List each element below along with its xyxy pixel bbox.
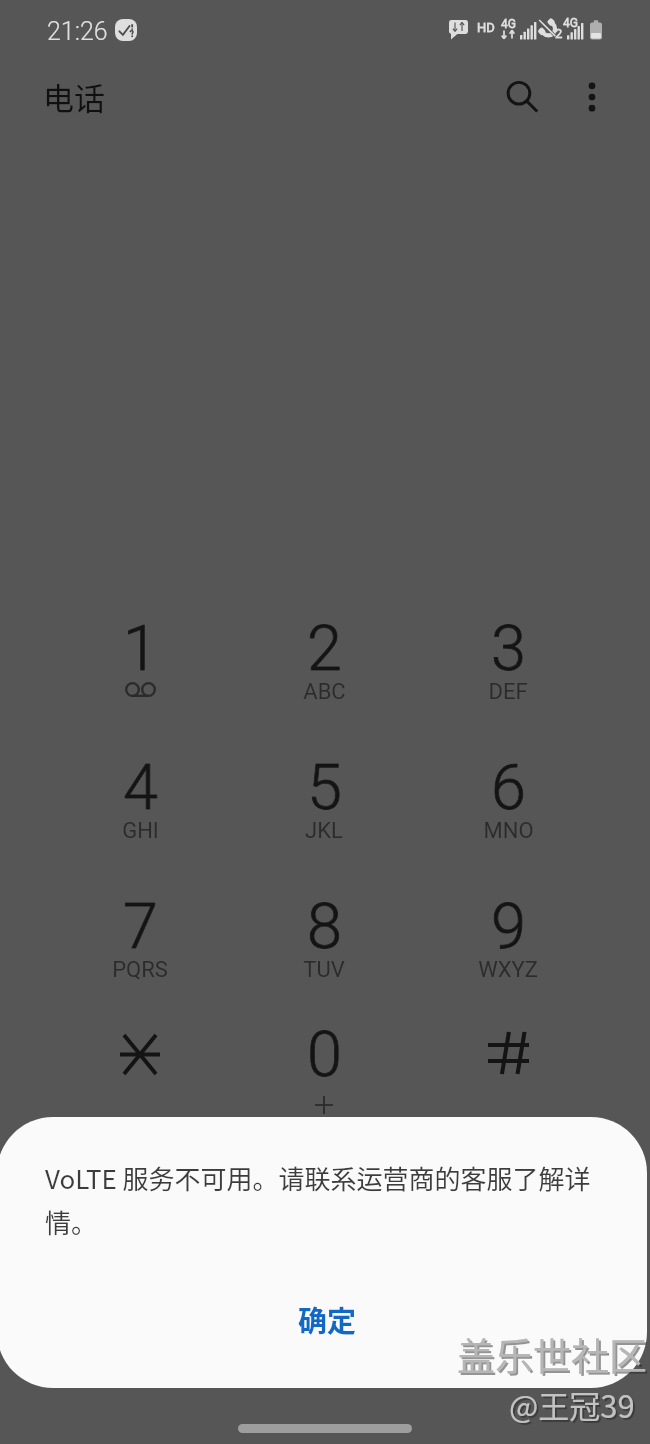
staticText: HD	[477, 20, 495, 35]
staticText: 5	[307, 751, 342, 825]
staticText: 6	[491, 751, 526, 825]
staticText: 电话	[43, 74, 105, 119]
button[interactable]: Star	[60, 1023, 220, 1155]
staticText: 2	[555, 26, 563, 41]
staticText: 2	[307, 612, 342, 686]
staticText: 1	[123, 612, 158, 686]
staticText: 1	[123, 612, 158, 686]
staticText: 0	[307, 1018, 342, 1092]
staticText: 9	[491, 890, 526, 964]
button[interactable]: 1	[60, 617, 220, 749]
staticText: JKL	[305, 818, 343, 844]
staticText: 2	[307, 612, 342, 686]
staticText: MNO	[483, 818, 534, 844]
button[interactable]: 8	[244, 895, 404, 1027]
staticText: 7	[123, 890, 158, 964]
staticText: 9	[491, 890, 526, 964]
button[interactable]: 0	[244, 1023, 404, 1155]
button[interactable]: 6	[428, 756, 588, 888]
staticText: 8	[307, 890, 342, 964]
button[interactable]: 2	[244, 617, 404, 749]
staticText: 6	[491, 751, 526, 825]
button[interactable]: 4	[60, 756, 220, 888]
staticText: 21:26	[47, 17, 108, 46]
staticText: VoLTE 服务不可用。请联系运营商的客服了解详情。	[45, 1159, 615, 1241]
staticText: 确定	[298, 1298, 357, 1340]
staticText: GHI	[122, 818, 159, 844]
staticText: DEF	[488, 679, 528, 705]
staticText: 4	[123, 751, 158, 825]
staticText: 4G	[563, 16, 578, 30]
staticText: 8	[307, 890, 342, 964]
staticText: 5	[307, 751, 342, 825]
staticText: PQRS	[112, 957, 168, 983]
staticText: @王冠39	[511, 1384, 637, 1429]
button[interactable]: 7	[60, 895, 220, 1027]
button[interactable]: Pound	[428, 1023, 588, 1155]
button[interactable]: 确定	[2, 1263, 647, 1374]
staticText: ABC	[303, 679, 346, 705]
staticText: 3	[491, 612, 526, 686]
staticText: WXYZ	[478, 957, 538, 983]
staticText: 4	[123, 751, 158, 825]
button[interactable]: Search	[494, 69, 550, 125]
staticText: TUV	[303, 957, 345, 983]
staticText: @王冠39	[509, 1382, 635, 1427]
staticText: 盖乐世社区	[457, 1326, 648, 1381]
staticText: 盖乐世社区	[459, 1328, 650, 1383]
button[interactable]: 9	[428, 895, 588, 1027]
staticText: 3	[491, 612, 526, 686]
staticText: 0	[307, 1018, 342, 1092]
staticText: 7	[123, 890, 158, 964]
button[interactable]: More options	[564, 69, 620, 125]
staticText: 4G	[501, 17, 516, 31]
button[interactable]: 5	[244, 756, 404, 888]
button[interactable]: 3	[428, 617, 588, 749]
